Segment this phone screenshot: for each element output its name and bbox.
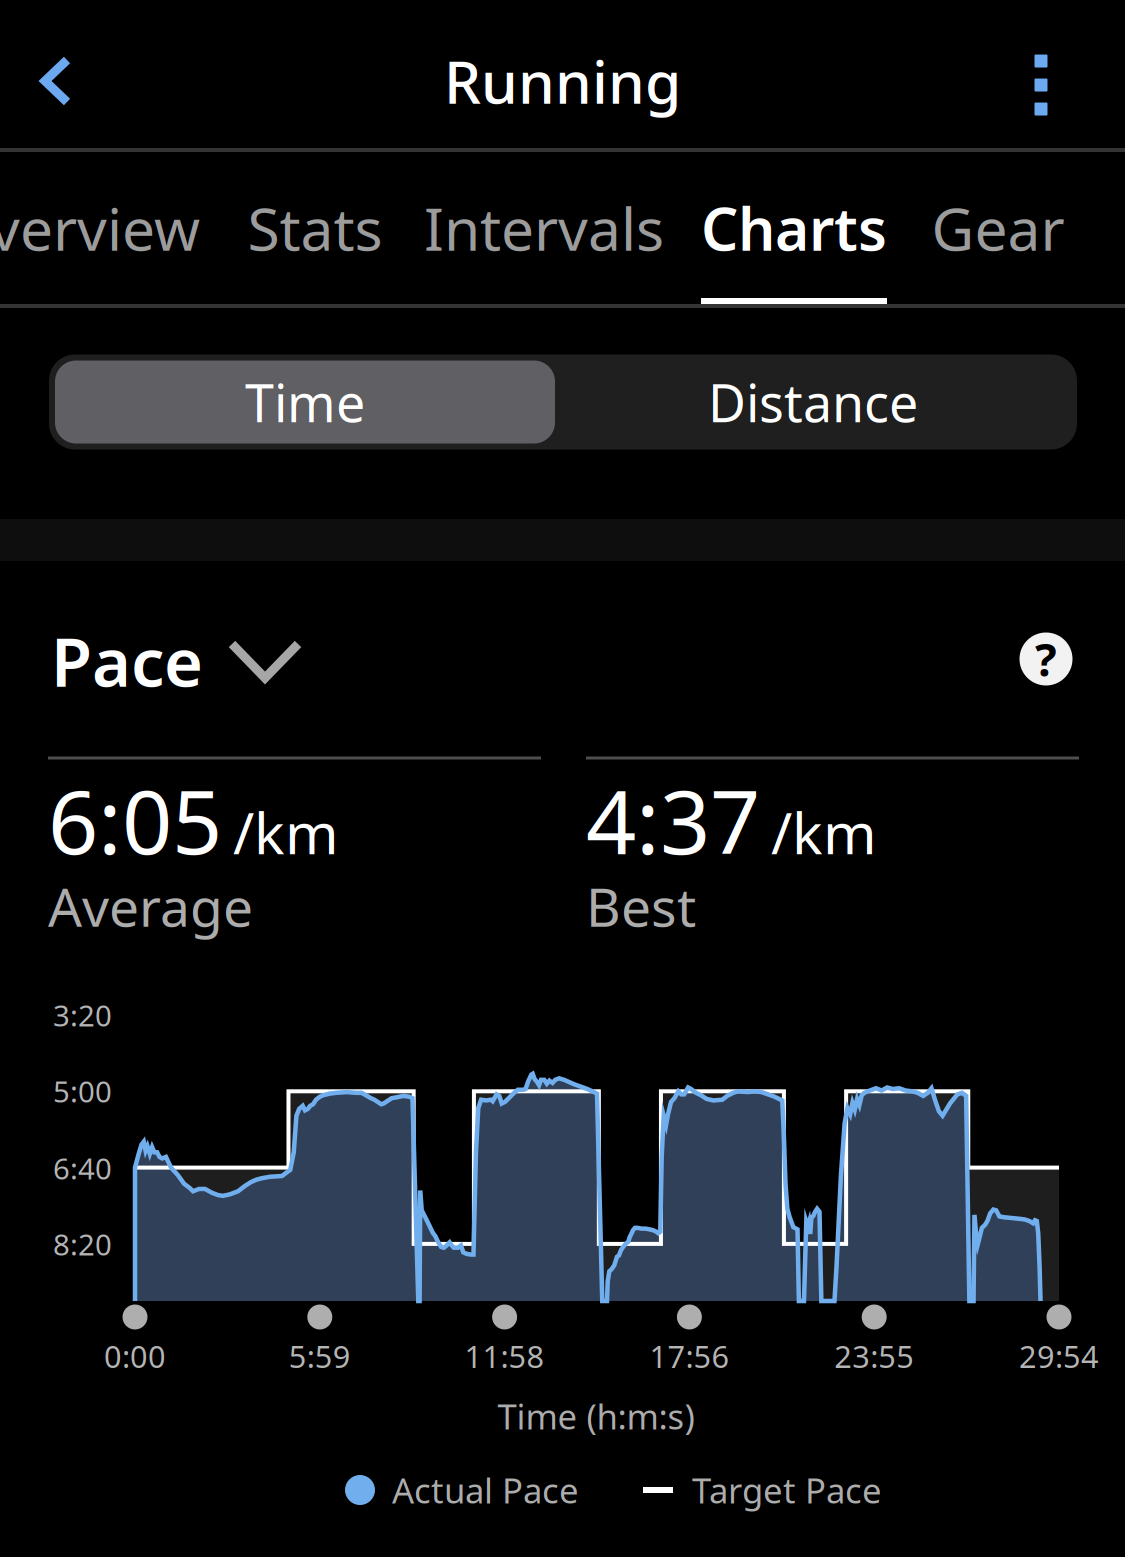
button[interactable]: Pace <box>51 611 381 711</box>
staticText: Overview <box>0 189 200 267</box>
staticText: Intervals <box>424 189 664 267</box>
staticText: 3:20 <box>53 995 112 1034</box>
staticText: /km <box>771 794 877 870</box>
button[interactable]: Intervals <box>394 152 694 304</box>
button[interactable]: Time <box>55 360 555 443</box>
staticText: Actual Pace <box>392 1467 579 1513</box>
button[interactable]: More options <box>996 20 1086 150</box>
staticText: Distance <box>708 367 918 437</box>
staticText: ? <box>1035 629 1057 689</box>
staticText: Charts <box>701 189 887 267</box>
button[interactable]: Distance <box>555 360 1071 443</box>
staticText: Average <box>48 871 253 941</box>
staticText: 4:37 <box>586 762 760 878</box>
staticText: 6:40 <box>53 1148 112 1187</box>
staticText: 17:56 <box>649 1336 729 1376</box>
staticText: 5:00 <box>53 1071 112 1110</box>
staticText: 11:58 <box>465 1336 545 1376</box>
button[interactable]: Charts <box>644 152 944 304</box>
staticText: Best <box>586 871 696 941</box>
staticText: 6:05 <box>48 762 222 878</box>
button[interactable]: Overview <box>0 152 200 304</box>
staticText: 23:55 <box>834 1336 914 1376</box>
staticText: Gear <box>931 189 1064 267</box>
staticText: Time (h:m:s) <box>497 1393 694 1439</box>
staticText: 29:54 <box>1019 1336 1099 1376</box>
staticText: 0:00 <box>104 1336 166 1376</box>
staticText: Target Pace <box>692 1467 882 1513</box>
staticText: 5:59 <box>289 1336 351 1376</box>
staticText: Stats <box>247 189 382 267</box>
staticText: 8:20 <box>53 1224 112 1263</box>
staticText: Pace <box>51 617 203 705</box>
button[interactable]: Back <box>9 24 103 138</box>
staticText: Time <box>245 367 365 437</box>
button[interactable]: Stats <box>165 152 465 304</box>
button[interactable]: Gear <box>848 152 1125 304</box>
staticText: /km <box>233 794 339 870</box>
button[interactable]: Help <box>1019 632 1072 685</box>
staticText: Running <box>444 42 681 120</box>
